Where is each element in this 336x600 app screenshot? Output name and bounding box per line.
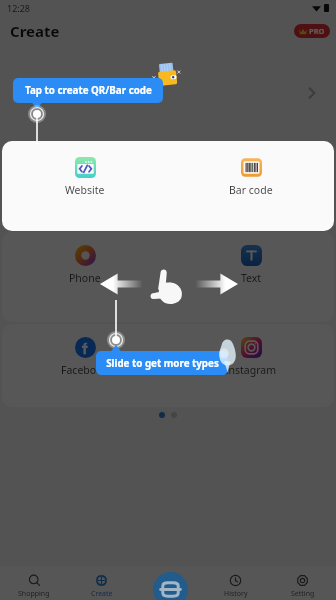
button[interactable]: Facebook [2, 324, 168, 407]
button[interactable]: Setting [269, 566, 336, 600]
staticText: Website [65, 183, 105, 197]
staticText: Tap to create QR/Bar code [25, 84, 152, 97]
button[interactable]: Scan [153, 572, 188, 600]
button[interactable]: History [202, 566, 269, 600]
staticText: Create [10, 21, 60, 41]
button[interactable]: Bar code [168, 141, 334, 231]
staticText: Facebook [61, 363, 109, 377]
button[interactable]: Bar code [168, 141, 334, 231]
staticText: History [224, 589, 248, 599]
staticText: Bar code [229, 183, 273, 197]
staticText: Create [91, 589, 113, 599]
staticText: Phone [69, 271, 101, 285]
button[interactable]: Create [68, 566, 135, 600]
staticText: Slide to get more types [106, 357, 219, 370]
staticText: Bar code [229, 183, 273, 197]
button[interactable]: PRO [294, 24, 330, 38]
button[interactable]: Text [168, 232, 334, 322]
staticText: 12:28 [7, 2, 31, 14]
staticText: Instagram [225, 363, 277, 377]
staticText: PRO [309, 26, 325, 36]
staticText: Text [241, 271, 262, 285]
staticText: Setting [291, 589, 315, 599]
staticText: Website [65, 183, 105, 197]
button[interactable]: Shopping [0, 566, 68, 600]
button[interactable]: Website [2, 141, 168, 231]
button[interactable]: Instagram [168, 324, 334, 407]
staticText: Shopping [18, 589, 50, 599]
button[interactable]: Phone [2, 232, 168, 322]
button[interactable]: Website [2, 141, 168, 231]
